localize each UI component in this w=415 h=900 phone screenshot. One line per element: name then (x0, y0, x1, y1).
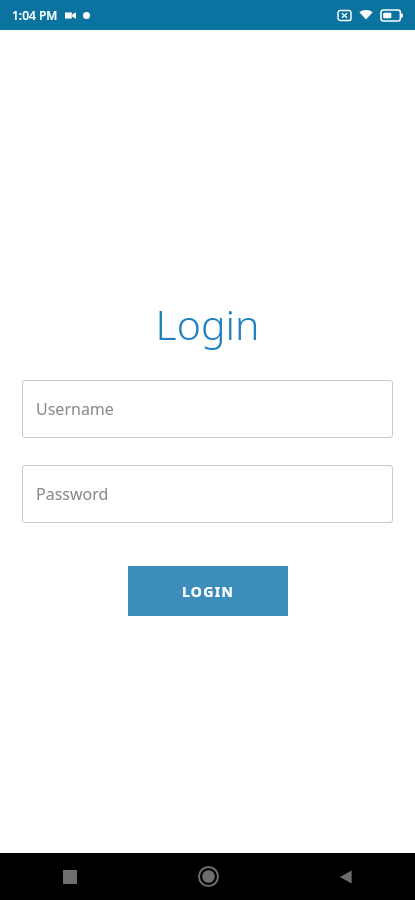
button[interactable]: Home (139, 853, 277, 900)
staticText: Password (36, 483, 109, 505)
button[interactable]: Password (22, 465, 393, 523)
staticText: LOGIN (182, 582, 235, 601)
button[interactable]: Back (277, 853, 415, 900)
button[interactable]: Recent apps (0, 853, 139, 900)
button[interactable]: LOGIN (128, 566, 288, 616)
button[interactable]: Username (22, 380, 393, 438)
staticText: 1:04 PM (12, 7, 58, 23)
staticText: Username (36, 398, 114, 420)
staticText: Login (0, 296, 415, 352)
